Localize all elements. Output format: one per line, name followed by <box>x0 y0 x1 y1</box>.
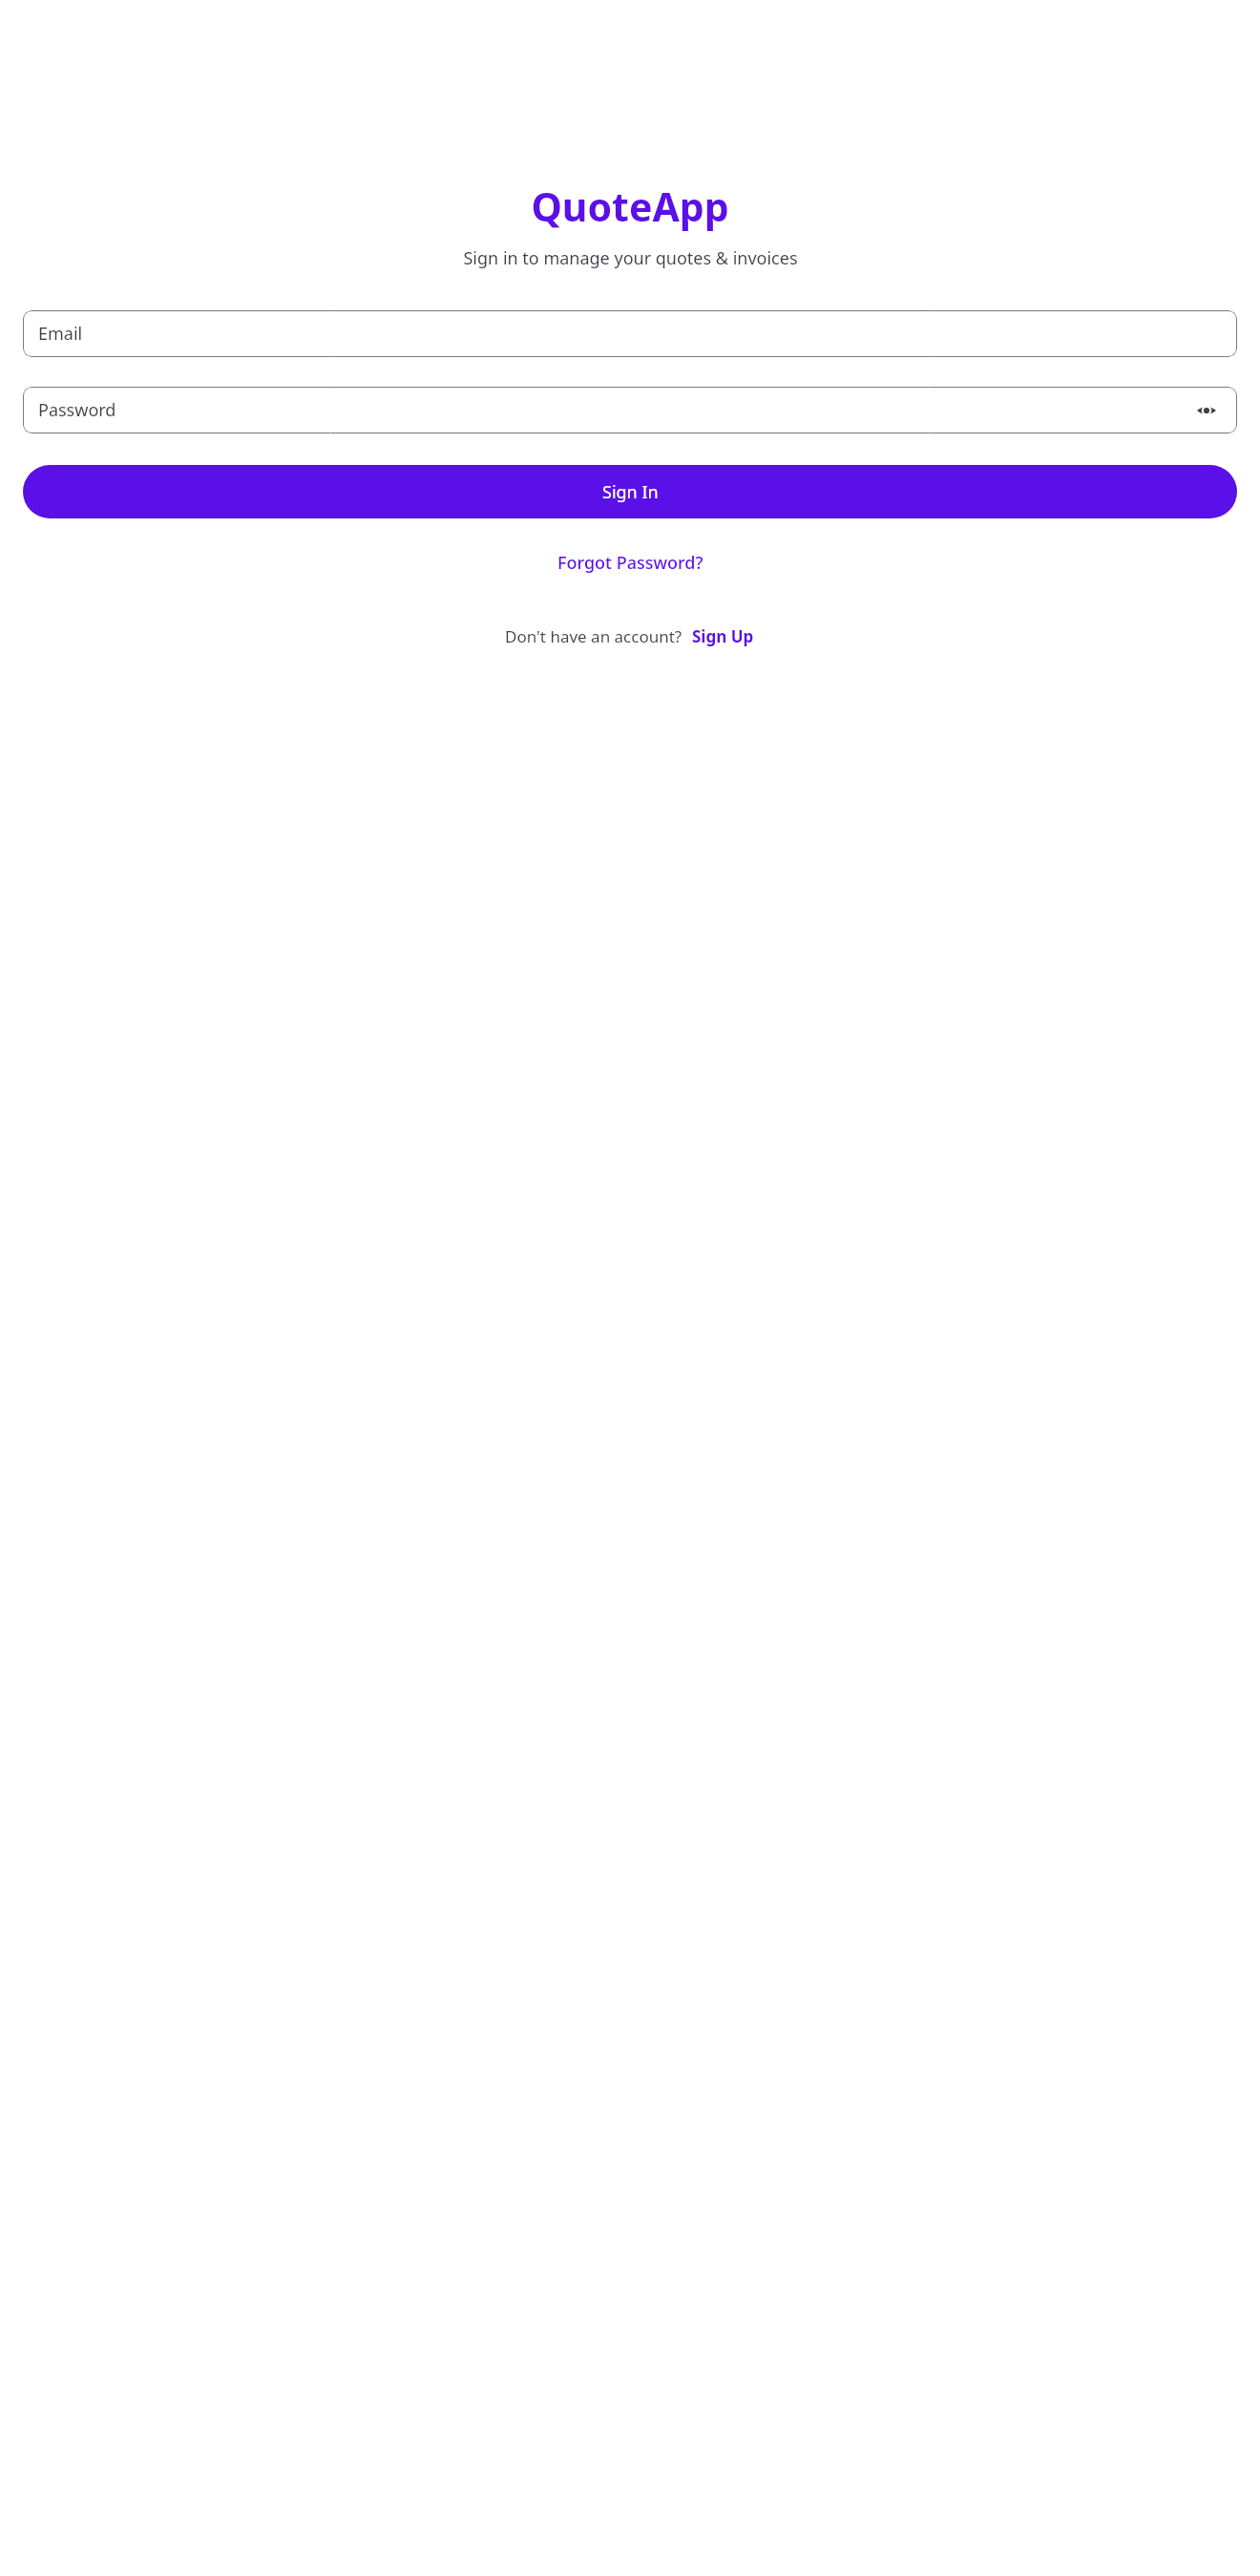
staticText: QuoteApp <box>531 179 729 233</box>
staticText: Sign Up <box>692 625 754 647</box>
button[interactable]: Sign Up <box>690 622 756 651</box>
button[interactable]: Forgot Password? <box>548 543 713 582</box>
staticText: Don't have an account? <box>505 625 682 647</box>
staticText: Forgot Password? <box>557 551 703 575</box>
staticText: Sign In <box>602 480 659 504</box>
staticText: Email <box>38 322 83 346</box>
button[interactable]: Show password <box>1191 395 1222 426</box>
button[interactable]: Sign In <box>23 465 1237 518</box>
button[interactable]: Email <box>23 310 1237 357</box>
staticText: Sign in to manage your quotes & invoices <box>463 246 798 270</box>
staticText: Password <box>38 398 116 422</box>
button[interactable]: Password <box>23 387 1237 433</box>
